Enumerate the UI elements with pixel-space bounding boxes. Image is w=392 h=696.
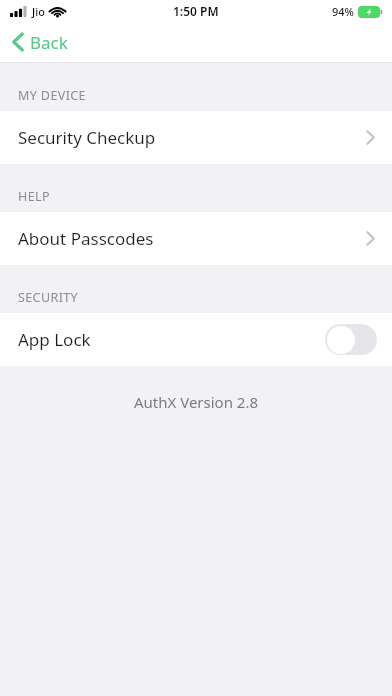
staticText: 94% (332, 4, 354, 19)
staticText: AuthX Version 2.8 (0, 392, 392, 412)
staticText: SECURITY (18, 289, 79, 306)
button[interactable]: App Lock toggle, off (325, 324, 377, 355)
staticText: 1:50 PM (173, 3, 219, 19)
staticText: Back (30, 31, 68, 54)
button[interactable]: About Passcodes (0, 212, 392, 265)
staticText: Jio (32, 4, 45, 19)
staticText: HELP (18, 188, 50, 205)
button[interactable]: Back (0, 22, 80, 62)
staticText: Security Checkup (18, 126, 156, 149)
staticText: About Passcodes (18, 227, 154, 250)
staticText: App Lock (18, 328, 91, 351)
staticText: MY DEVICE (18, 87, 86, 104)
button[interactable]: Security Checkup (0, 111, 392, 164)
button[interactable]: App Lock (0, 313, 392, 366)
